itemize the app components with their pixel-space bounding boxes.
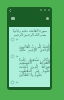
button[interactable]: Action <box>47 8 51 12</box>
staticText: بسم الله الرحمن الرحيم <box>10 32 50 36</box>
staticText: الْحَمْدُ لِلَّهِ رَبِّ الْعَالَمِينَ ال… <box>19 44 50 52</box>
button[interactable]: Play verse <box>16 81 19 84</box>
button[interactable]: Bookmark verse <box>11 38 14 41</box>
button[interactable]: Action <box>43 8 47 12</box>
button[interactable]: Juz <box>46 17 49 20</box>
staticText: سورة الفاتحة مكية وآياتها سبع <box>10 28 50 32</box>
button[interactable]: Bookmark verse <box>11 81 14 84</box>
button[interactable]: Back <box>8 8 12 12</box>
button[interactable]: Play verse <box>16 38 19 41</box>
button[interactable]: Action <box>39 8 43 12</box>
button[interactable]: Play verse <box>16 55 19 58</box>
button[interactable]: Bookmark verse <box>11 55 14 58</box>
staticText: وَإِيَّاكَ نَسْتَعِينُ اهْدِنَا الصِّرَا… <box>19 57 50 77</box>
button[interactable]: Page number <box>11 17 15 20</box>
